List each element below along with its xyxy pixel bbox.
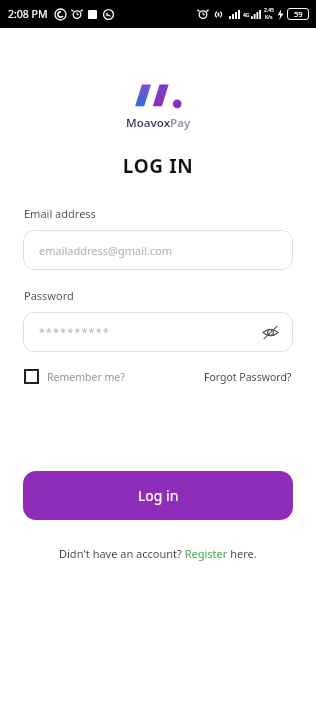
staticText: MoavoxPay	[126, 115, 191, 131]
button[interactable]: Didn't have an account? Register here.	[59, 546, 257, 561]
staticText: 2.45	[264, 7, 274, 14]
staticText: LOG IN	[0, 153, 316, 179]
staticText: Log in	[138, 486, 179, 505]
staticText: Forgot Password?	[204, 370, 292, 384]
staticText: Password	[24, 288, 74, 303]
staticText: 59	[294, 9, 303, 19]
staticText: K/s	[265, 14, 273, 21]
staticText: 2:08 PM	[8, 7, 48, 21]
button[interactable]: **********	[23, 312, 293, 352]
button[interactable]: Show password	[259, 321, 281, 343]
button[interactable]: Remember me?	[24, 369, 125, 384]
staticText: 4G	[243, 12, 250, 19]
staticText: Remember me?	[47, 370, 125, 384]
staticText: **********	[39, 325, 111, 339]
button[interactable]: emailaddress@gmail.com	[23, 230, 293, 270]
staticText: emailaddress@gmail.com	[39, 243, 173, 258]
staticText: Email address	[24, 206, 96, 221]
button[interactable]: Log in	[23, 471, 293, 520]
button[interactable]: Forgot Password?	[204, 370, 292, 384]
